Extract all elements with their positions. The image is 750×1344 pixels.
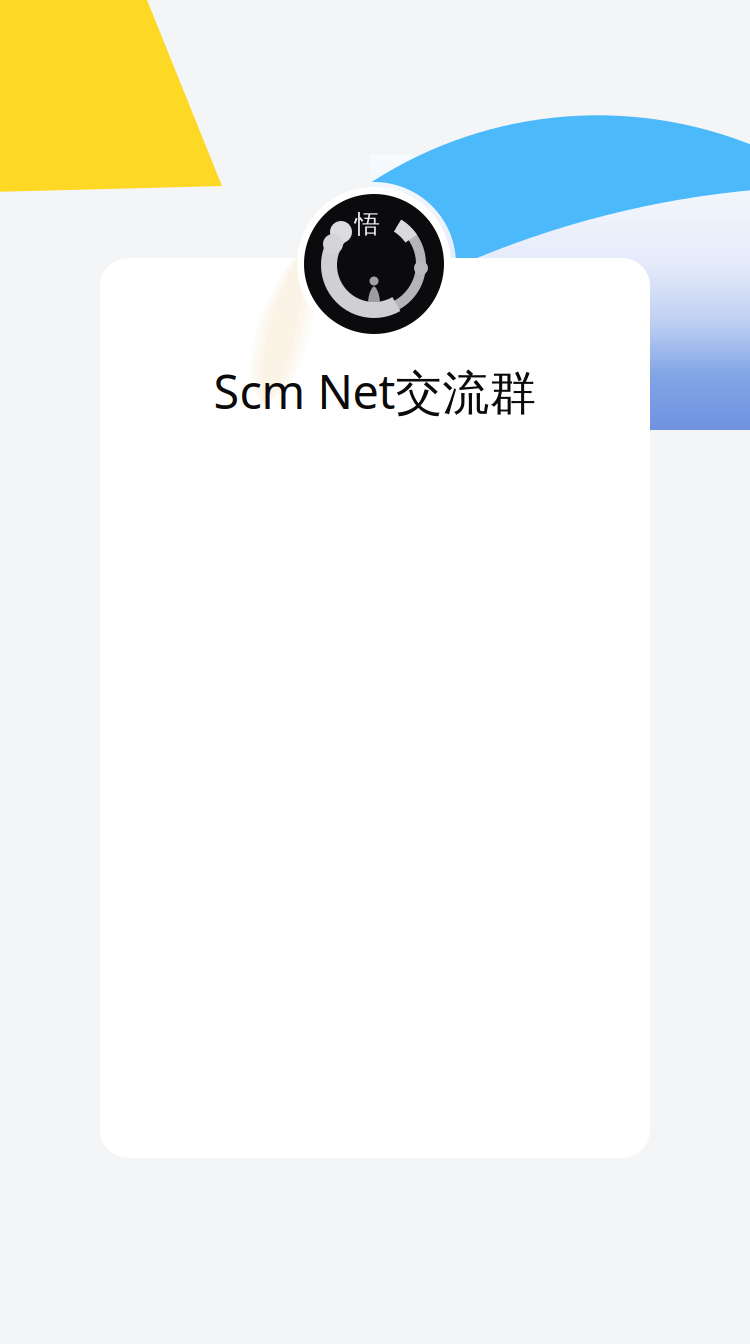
- staticText: Scm Net交流群: [213, 360, 536, 422]
- staticText: 悟: [354, 208, 379, 239]
